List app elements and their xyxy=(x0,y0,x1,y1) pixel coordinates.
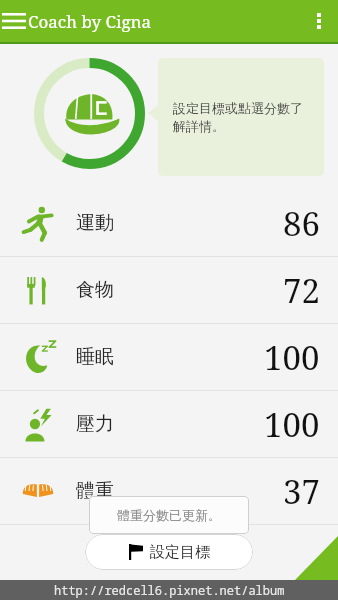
button[interactable]: More options xyxy=(300,0,338,42)
button[interactable]: Menu xyxy=(0,0,30,42)
staticText: 壓力 xyxy=(76,412,114,436)
button[interactable]: 設定目標 xyxy=(85,534,253,570)
button[interactable]: Stress xyxy=(0,391,338,457)
staticText: 100 xyxy=(264,402,320,447)
staticText: Coach by Cigna xyxy=(28,10,152,33)
button[interactable]: Food xyxy=(0,257,338,323)
button[interactable]: 設定目標或點選分數了解詳情。 xyxy=(158,58,324,176)
staticText: 86 xyxy=(283,201,320,246)
button[interactable]: Overall score xyxy=(33,57,146,170)
staticText: 食物 xyxy=(76,278,114,302)
staticText: 37 xyxy=(283,469,320,514)
button[interactable]: Sleep xyxy=(0,324,338,390)
staticText: http://redcell6.pixnet.net/album xyxy=(54,582,285,598)
staticText: 72 xyxy=(283,268,320,313)
staticText: 運動 xyxy=(76,211,114,235)
staticText: 設定目標 xyxy=(150,543,210,562)
button[interactable]: Weight xyxy=(0,458,338,524)
staticText: 睡眠 xyxy=(76,345,114,369)
staticText: 體重 xyxy=(76,479,114,503)
staticText: 設定目標或點選分數了解詳情。 xyxy=(173,100,310,135)
button[interactable]: Exercise xyxy=(0,190,338,256)
staticText: 100 xyxy=(264,335,320,380)
staticText: 體重分數已更新。 xyxy=(117,507,221,523)
